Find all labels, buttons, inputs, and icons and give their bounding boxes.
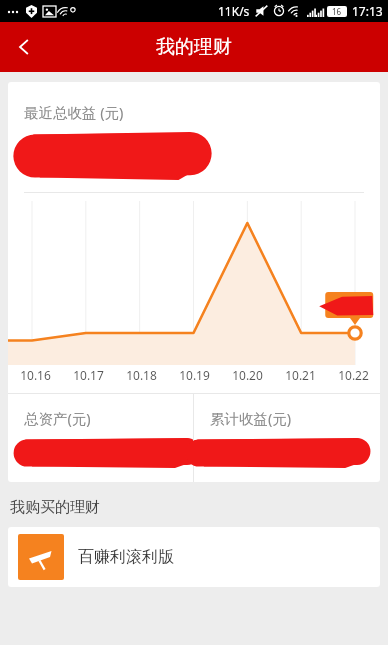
staticText: 百赚利滚利版 [78, 547, 174, 567]
staticText: 10.22 [338, 367, 369, 383]
staticText: 10.18 [126, 367, 157, 383]
staticText: 10.21 [285, 367, 316, 383]
staticText: 我的理财 [156, 35, 232, 59]
staticText: 总资产(元) [24, 408, 91, 428]
staticText: 10.20 [232, 367, 263, 383]
button[interactable]: Back [0, 23, 48, 71]
staticText: 10.17 [73, 367, 104, 383]
staticText: 10.19 [179, 367, 210, 383]
staticText: 10.16 [20, 367, 51, 383]
staticText: 11K/s [218, 3, 250, 19]
button[interactable]: 百赚利滚利版 [8, 527, 380, 587]
staticText: 最近总收益 (元) [24, 102, 124, 122]
staticText: 我购买的理财 [10, 498, 100, 517]
staticText: 17:13 [352, 3, 383, 19]
staticText: 累计收益(元) [210, 408, 292, 428]
staticText: 16 [332, 6, 342, 17]
